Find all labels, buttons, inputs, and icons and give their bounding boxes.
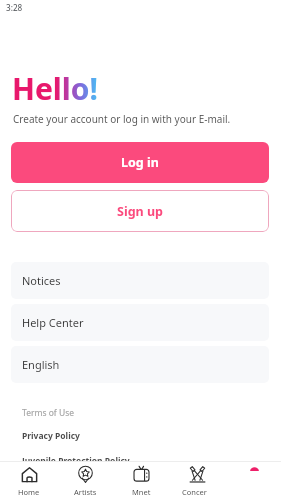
button[interactable]: Help Center <box>11 304 269 341</box>
staticText: Help Center <box>22 315 84 330</box>
staticText: Hello! <box>12 68 98 109</box>
button[interactable]: English <box>11 346 269 383</box>
button[interactable]: Artists <box>59 463 111 499</box>
button[interactable]: Terms of Use <box>22 407 75 419</box>
button[interactable]: My page <box>228 463 280 499</box>
button[interactable]: Concert <box>171 463 223 499</box>
staticText: Home <box>18 487 40 497</box>
staticText: Artists <box>74 487 97 497</box>
staticText: Create your account or log in with your … <box>13 112 231 126</box>
button[interactable]: Juvenile Protection Policy <box>22 455 130 467</box>
staticText: Concer <box>182 487 207 497</box>
button[interactable]: Sign up <box>11 190 269 232</box>
staticText: English <box>22 357 60 372</box>
button[interactable]: Privacy Policy <box>22 430 80 442</box>
button[interactable]: Mnet <box>115 463 167 499</box>
button[interactable]: Log in <box>11 142 269 183</box>
button[interactable]: Notices <box>11 262 269 299</box>
staticText: 3:28 <box>6 2 23 13</box>
staticText: Sign up <box>117 203 163 220</box>
staticText: Log in <box>121 154 159 171</box>
staticText: Notices <box>22 273 61 288</box>
staticText: Mnet <box>132 487 151 497</box>
button[interactable]: Home <box>3 463 55 499</box>
